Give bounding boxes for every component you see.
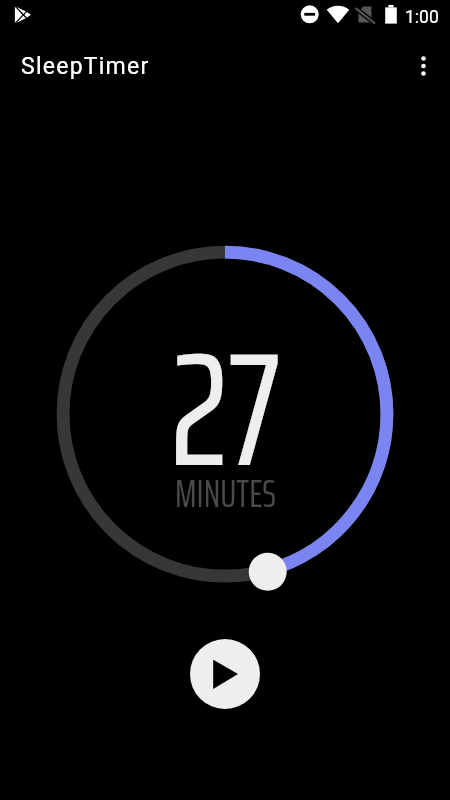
- button[interactable]: More options: [402, 44, 444, 86]
- staticText: 27: [170, 283, 281, 535]
- staticText: SleepTimer: [21, 53, 150, 80]
- staticText: 1:00: [405, 7, 439, 28]
- staticText: MINUTES: [175, 464, 276, 524]
- button[interactable]: Start timer: [190, 639, 260, 709]
